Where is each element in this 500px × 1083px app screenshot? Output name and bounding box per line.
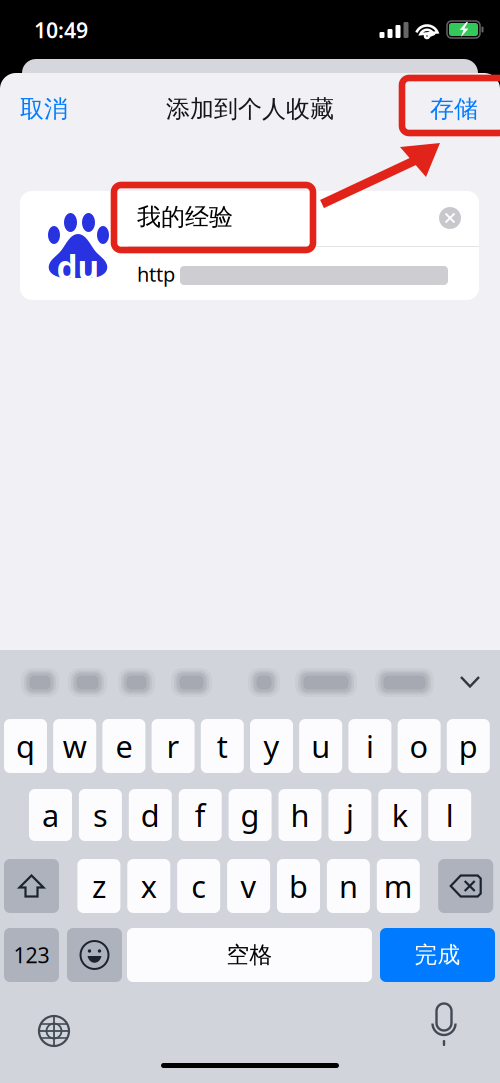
staticText: b <box>289 866 308 906</box>
button[interactable]: 空格 <box>127 928 372 982</box>
button[interactable]: Dictation <box>422 1003 466 1047</box>
staticText: du <box>56 245 99 289</box>
staticText: z <box>92 866 106 906</box>
button[interactable]: y <box>250 719 293 773</box>
button[interactable]: z <box>77 859 120 913</box>
button[interactable]: n <box>327 859 370 913</box>
staticText: q <box>16 726 35 766</box>
button[interactable]: o <box>398 719 441 773</box>
button[interactable]: d <box>129 789 172 841</box>
staticText: d <box>141 795 160 835</box>
staticText: y <box>263 726 279 766</box>
staticText: 添加到个人收藏 <box>166 94 334 124</box>
staticText: j <box>346 795 354 835</box>
staticText: x <box>141 866 157 906</box>
button[interactable]: u <box>299 719 342 773</box>
staticText: 10:49 <box>34 16 88 44</box>
staticText: http <box>137 261 175 287</box>
staticText: e <box>115 726 132 766</box>
button[interactable]: 存储 <box>388 85 478 133</box>
button[interactable]: Clear <box>438 206 462 230</box>
staticText: 123 <box>13 941 49 969</box>
staticText: 存储 <box>430 94 478 124</box>
staticText: c <box>191 866 206 906</box>
staticText: a <box>42 795 59 835</box>
button[interactable]: m <box>377 859 420 913</box>
staticText: o <box>410 726 429 766</box>
button[interactable]: j <box>328 789 371 841</box>
button[interactable]: s <box>79 789 122 841</box>
staticText: 我的经验 <box>137 202 233 232</box>
staticText: 完成 <box>414 941 460 969</box>
staticText: i <box>366 726 374 766</box>
button[interactable]: w <box>53 719 96 773</box>
button[interactable]: g <box>229 789 272 841</box>
staticText: g <box>241 795 260 835</box>
staticText: r <box>167 726 180 766</box>
button[interactable]: 完成 <box>380 928 495 982</box>
staticText: k <box>392 795 408 835</box>
button[interactable]: 123 <box>4 928 59 982</box>
button[interactable]: p <box>447 719 490 773</box>
button[interactable]: t <box>201 719 244 773</box>
staticText: n <box>339 866 358 906</box>
button[interactable]: c <box>177 859 220 913</box>
button[interactable]: k <box>378 789 421 841</box>
staticText: 取消 <box>20 94 68 124</box>
button[interactable]: e <box>102 719 145 773</box>
button[interactable]: b <box>277 859 320 913</box>
button[interactable]: Hide Keyboard <box>448 664 492 700</box>
staticText: f <box>195 795 206 835</box>
button[interactable]: l <box>428 789 471 841</box>
button[interactable]: r <box>152 719 195 773</box>
staticText: h <box>290 795 309 835</box>
staticText: u <box>311 726 330 766</box>
staticText: s <box>93 795 108 835</box>
staticText: t <box>217 726 228 766</box>
button[interactable]: 取消 <box>20 85 130 133</box>
staticText: v <box>241 866 257 906</box>
staticText: w <box>63 726 87 766</box>
button[interactable]: h <box>278 789 321 841</box>
staticText: 空格 <box>226 941 272 969</box>
staticText: l <box>446 795 454 835</box>
button[interactable]: Delete <box>438 859 493 913</box>
button[interactable]: i <box>348 719 391 773</box>
button[interactable]: f <box>179 789 222 841</box>
button[interactable]: a <box>29 789 72 841</box>
button[interactable]: Shift <box>4 859 59 913</box>
staticText: m <box>384 866 413 906</box>
button[interactable]: v <box>227 859 270 913</box>
button[interactable]: Emoji <box>67 928 122 982</box>
staticText: p <box>459 726 478 766</box>
button[interactable]: x <box>127 859 170 913</box>
button[interactable]: Switch Keyboard <box>32 1009 76 1053</box>
button[interactable]: q <box>4 719 47 773</box>
